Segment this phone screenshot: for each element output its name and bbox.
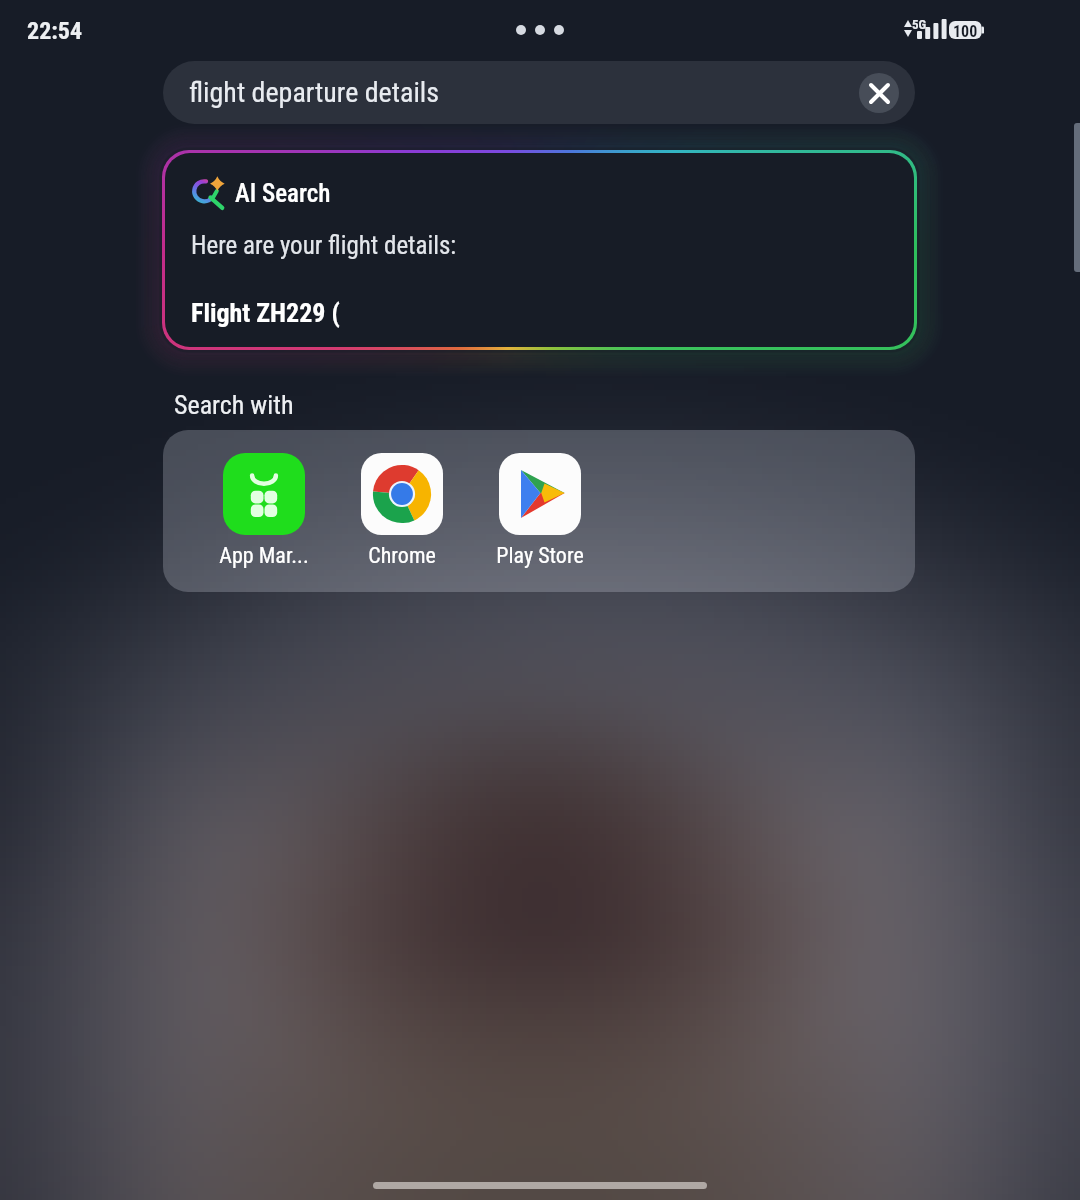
staticText: Chrome	[368, 543, 436, 569]
staticText: 5G	[912, 17, 927, 32]
button[interactable]: Play Store	[471, 453, 609, 569]
button[interactable]: App Mar...	[195, 453, 333, 569]
staticText: Here are your flight details:	[191, 231, 457, 260]
staticText: AI Search	[235, 179, 331, 208]
staticText: flight departure details	[189, 76, 440, 109]
staticText: Search with	[174, 390, 294, 420]
staticText: 22:54	[27, 17, 83, 45]
button[interactable]: AI Search	[165, 153, 914, 347]
button[interactable]: Clear search	[859, 73, 899, 113]
staticText: 100	[953, 22, 978, 41]
staticText: Play Store	[496, 543, 584, 569]
button[interactable]: flight departure details	[163, 61, 915, 124]
staticText: App Mar...	[219, 543, 309, 569]
staticText: Flight ZH229 (	[191, 298, 340, 328]
button[interactable]: Chrome	[333, 453, 471, 569]
